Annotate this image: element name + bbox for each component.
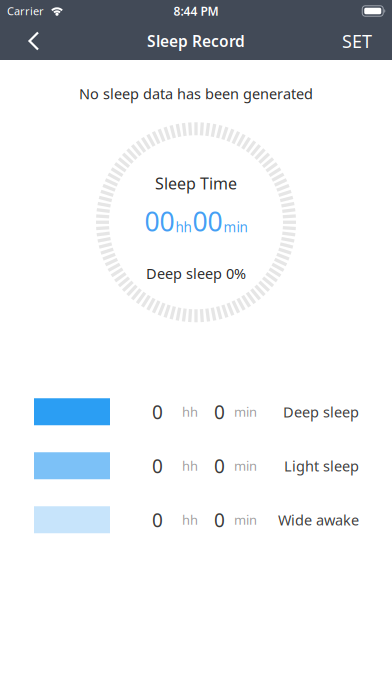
staticText: 0 [152,507,163,532]
staticText: No sleep data has been generated [79,84,313,103]
staticText: min [223,218,247,236]
staticText: 00 [144,204,174,239]
staticText: 0 [214,453,225,478]
staticText: hh [182,511,198,528]
button[interactable]: SET [342,29,392,53]
staticText: 0 [152,453,163,478]
staticText: Wide awake [278,510,359,529]
staticText: hh [182,457,198,474]
button[interactable]: Back [0,30,52,51]
staticText: 0 [152,399,163,424]
staticText: 8:44 PM [173,3,218,19]
staticText: min [234,403,257,420]
staticText: hh [182,403,198,420]
staticText: Deep sleep 0% [146,264,246,283]
staticText: Sleep Time [155,173,237,194]
staticText: hh [175,218,191,236]
staticText: Carrier [7,4,44,18]
staticText: Deep sleep [283,402,359,421]
staticText: min [234,511,257,528]
staticText: 0 [214,507,225,532]
staticText: Light sleep [284,456,359,475]
staticText: 0 [214,399,225,424]
staticText: min [234,457,257,474]
staticText: SET [342,29,372,53]
staticText: 00 [192,204,222,239]
staticText: Sleep Record [147,31,245,51]
